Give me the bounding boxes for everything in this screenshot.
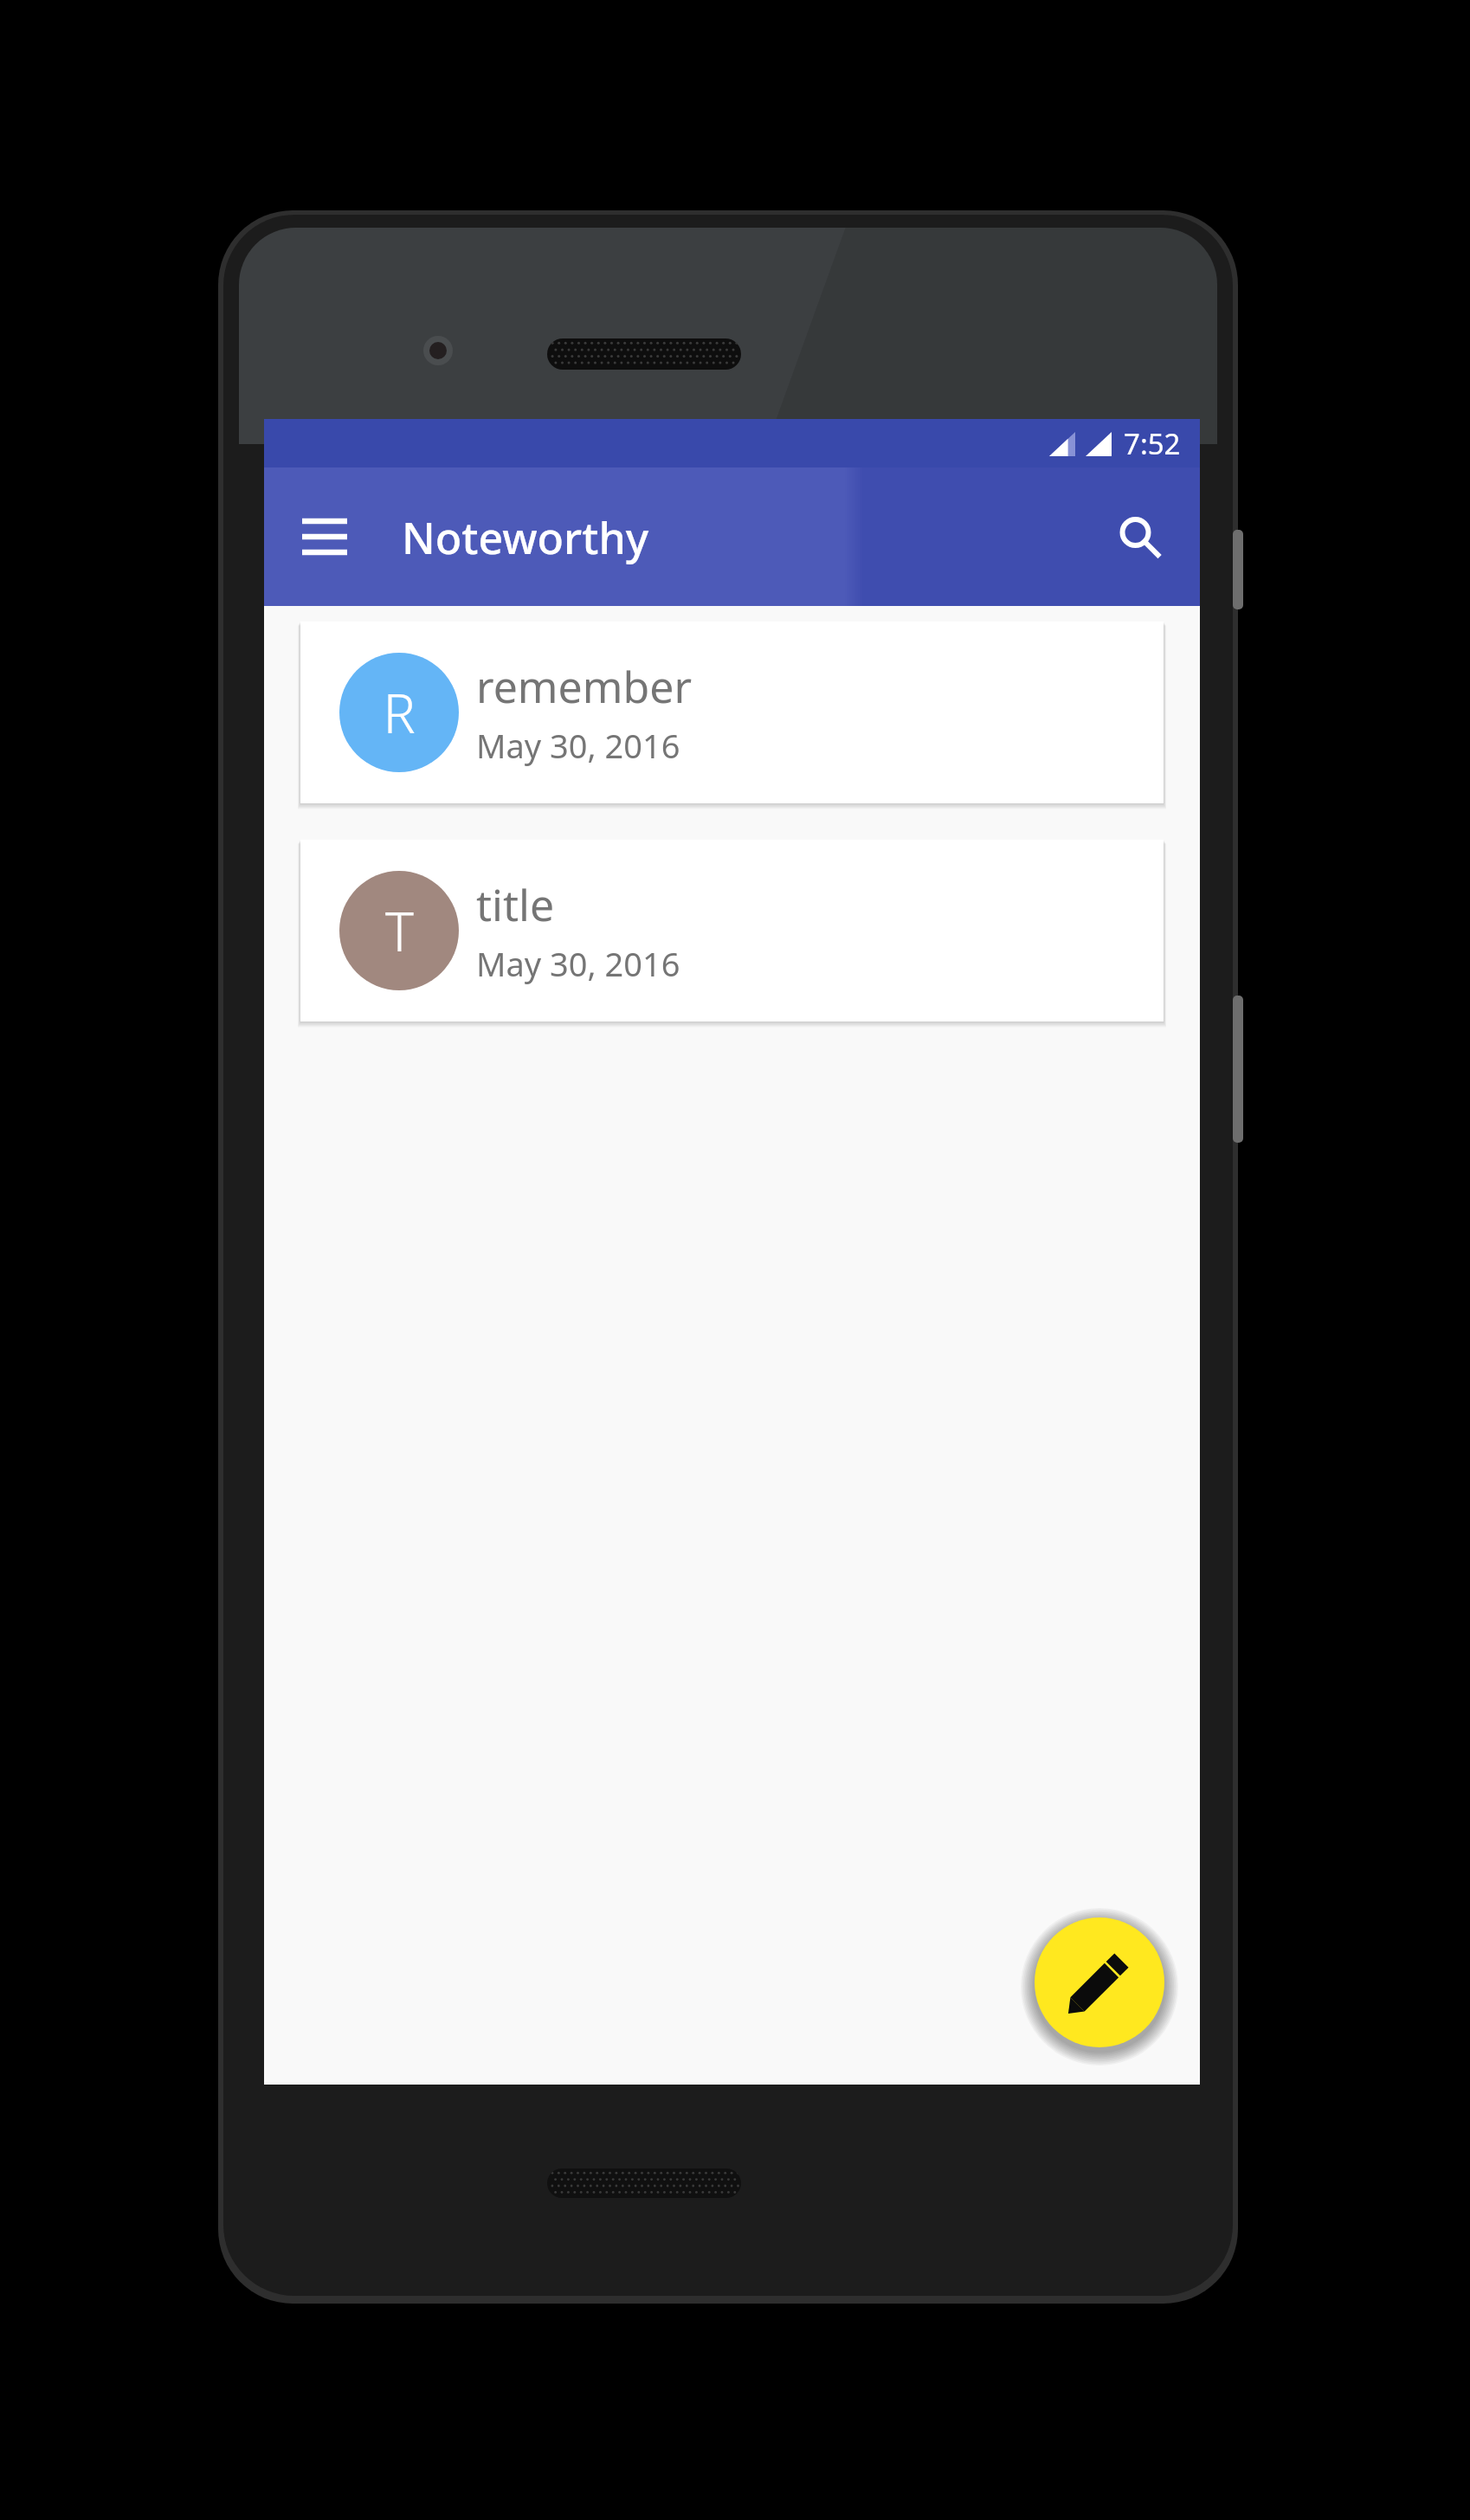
button[interactable]: Search — [1098, 495, 1181, 578]
staticText: May 30, 2016 — [476, 941, 680, 986]
staticText: title — [476, 875, 555, 934]
staticText: Noteworthy — [402, 508, 649, 567]
staticText: May 30, 2016 — [476, 723, 680, 768]
button[interactable]: Navigation drawer — [283, 495, 366, 578]
staticText: remember — [476, 657, 693, 716]
staticText: 7:52 — [1124, 424, 1181, 463]
staticText: T — [385, 894, 414, 967]
staticText: R — [383, 676, 416, 749]
button[interactable]: T — [300, 840, 1164, 1022]
button[interactable]: New note — [1035, 1917, 1164, 2047]
button[interactable]: R — [300, 622, 1164, 803]
